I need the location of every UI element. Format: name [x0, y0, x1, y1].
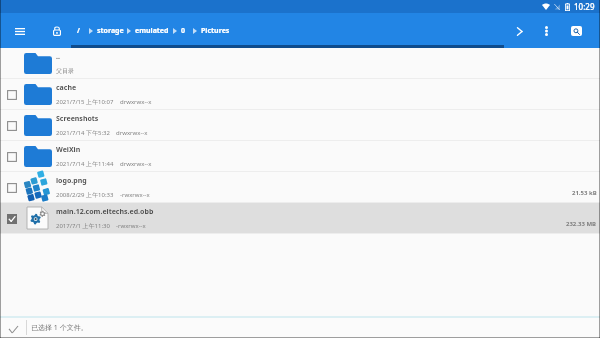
- staticText: main.12.com.eltechs.ed.obb: [56, 207, 154, 217]
- staticText: 父目录: [56, 67, 74, 75]
- staticText: logo.png: [56, 176, 87, 186]
- button[interactable]: Search: [571, 26, 582, 36]
- staticText: ..: [56, 52, 60, 62]
- button[interactable]: cache: [0, 79, 600, 109]
- button[interactable]: main.12.com.eltechs.ed.obb: [0, 203, 600, 233]
- staticText: -rwxrwx--x: [116, 222, 146, 230]
- staticText: 0: [181, 26, 186, 36]
- staticText: storage: [97, 26, 124, 36]
- staticText: 2017/7/1 上午11:30: [56, 222, 110, 230]
- button[interactable]: logo.png: [0, 172, 600, 202]
- staticText: 已选择 1 个文件。: [31, 323, 88, 333]
- staticText: cache: [56, 83, 77, 93]
- staticText: 10:29: [574, 1, 595, 12]
- button[interactable]: ..: [0, 48, 600, 78]
- staticText: drwxrwx--x: [116, 129, 148, 137]
- staticText: -rwxrwx--x: [120, 191, 150, 199]
- button[interactable]: More options: [537, 22, 555, 40]
- staticText: emulated: [135, 26, 169, 36]
- staticText: /: [77, 26, 80, 36]
- button[interactable]: WeiXin: [0, 141, 600, 171]
- button[interactable]: Confirm selection: [9, 319, 18, 336]
- button[interactable]: Lock: [50, 24, 64, 38]
- button[interactable]: Forward: [510, 22, 528, 40]
- staticText: 232.33 MB: [566, 220, 597, 228]
- staticText: 2021/7/14 下午5:32: [56, 129, 110, 137]
- staticText: WeiXin: [56, 145, 81, 155]
- staticText: 2021/7/14 上午11:44: [56, 160, 114, 168]
- staticText: drwxrwx--x: [120, 98, 152, 106]
- staticText: 2008/2/29 上午10:33: [56, 191, 114, 199]
- staticText: 2021/7/15 上午10:07: [56, 98, 114, 106]
- staticText: Pictures: [201, 26, 230, 36]
- staticText: Screenshots: [56, 114, 99, 124]
- staticText: 21.53 kB: [572, 189, 597, 197]
- staticText: drwxrwx--x: [120, 160, 152, 168]
- button[interactable]: Screenshots: [0, 110, 600, 140]
- button[interactable]: Menu: [13, 24, 27, 38]
